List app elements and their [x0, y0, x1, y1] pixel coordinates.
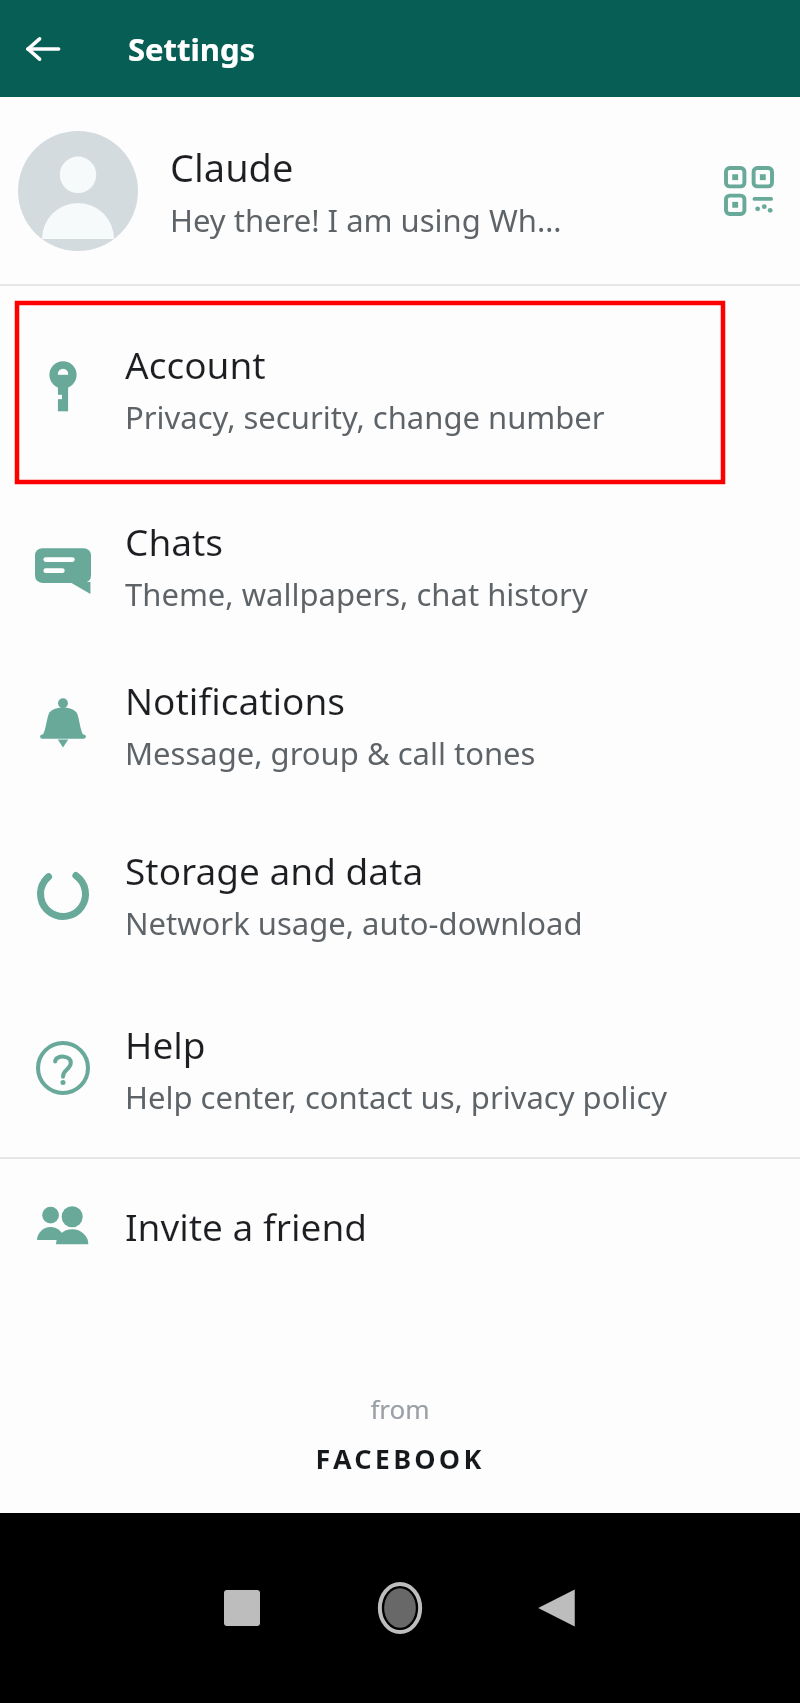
staticText: Storage and data: [125, 845, 424, 895]
button[interactable]: Chats: [0, 491, 800, 639]
staticText: Claude: [170, 141, 294, 193]
staticText: Network usage, auto-download: [125, 902, 583, 944]
button[interactable]: Help: [0, 979, 800, 1157]
staticText: Help: [125, 1019, 206, 1069]
staticText: FACEBOOK: [315, 1440, 485, 1477]
button[interactable]: Storage and data: [0, 809, 800, 979]
button[interactable]: QR code: [706, 148, 792, 234]
staticText: Message, group & call tones: [125, 732, 536, 774]
button[interactable]: Recent apps: [187, 1553, 297, 1663]
staticText: Notifications: [125, 675, 346, 725]
button[interactable]: Account: [0, 286, 800, 491]
button[interactable]: Claude: [0, 97, 800, 284]
staticText: Help center, contact us, privacy policy: [125, 1076, 668, 1118]
staticText: Theme, wallpapers, chat history: [125, 573, 588, 615]
staticText: from: [370, 1391, 430, 1426]
staticText: Privacy, security, change number: [125, 396, 605, 438]
button[interactable]: Invite a friend: [0, 1159, 800, 1292]
staticText: Chats: [125, 516, 224, 566]
button[interactable]: Back: [503, 1553, 613, 1663]
staticText: Account: [125, 339, 266, 389]
button[interactable]: Home: [345, 1553, 455, 1663]
staticText: Settings: [128, 28, 256, 70]
button[interactable]: Notifications: [0, 639, 800, 809]
button[interactable]: Back: [10, 16, 76, 82]
staticText: Hey there! I am using Wh…: [170, 199, 562, 241]
staticText: Invite a friend: [125, 1201, 368, 1251]
